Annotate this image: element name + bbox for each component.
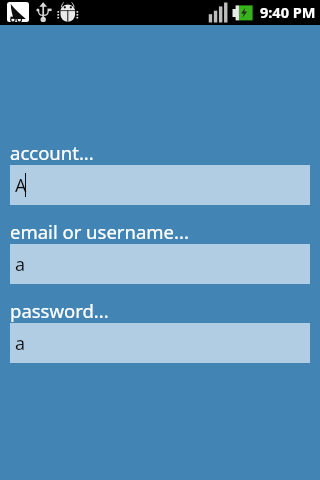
- staticText: a: [15, 331, 26, 356]
- staticText: account...: [10, 140, 94, 165]
- other: USB connected: [34, 2, 53, 23]
- staticText: email or username...: [10, 219, 189, 244]
- other: USB debugging enabled: [55, 2, 79, 23]
- staticText: password...: [10, 298, 109, 323]
- staticText: 9:40 PM: [260, 2, 316, 22]
- button[interactable]: a: [10, 323, 310, 363]
- button[interactable]: A: [10, 165, 310, 205]
- staticText: a: [15, 252, 26, 277]
- other: App notification: [7, 2, 29, 22]
- other: Battery charging: [232, 5, 253, 21]
- button[interactable]: a: [10, 244, 310, 284]
- other: Signal strength: [208, 2, 228, 23]
- staticText: A: [15, 173, 27, 198]
